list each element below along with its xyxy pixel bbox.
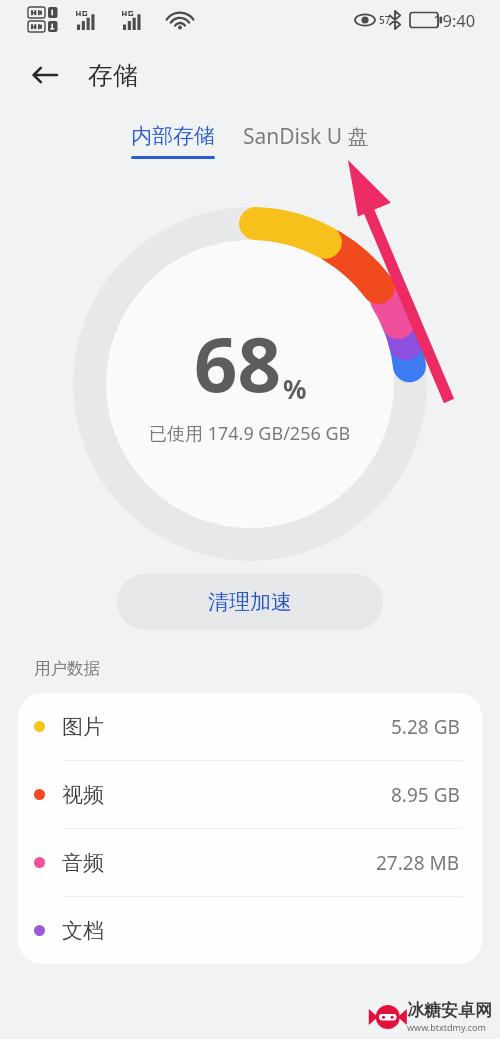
staticText: 已使用 174.9 GB/256 GB — [149, 421, 351, 446]
staticText: 8.95 GB — [391, 782, 460, 808]
button[interactable]: Back — [18, 48, 72, 102]
staticText: 19:40 — [433, 9, 476, 31]
staticText: 68 — [194, 311, 281, 415]
staticText: 冰糖安卓网 — [407, 1000, 492, 1021]
staticText: 27.28 MB — [376, 850, 460, 876]
staticText: 清理加速 — [208, 589, 292, 615]
staticText: 5.28 GB — [391, 714, 460, 740]
staticText: www.btxtdmy.com — [407, 1021, 486, 1033]
button[interactable]: 文档 — [18, 897, 482, 964]
staticText: 文档 — [62, 918, 104, 944]
staticText: 内部存储 — [131, 123, 215, 149]
staticText: 用户数据 — [34, 658, 100, 679]
button[interactable]: 内部存储 — [125, 123, 221, 159]
staticText: SanDisk U 盘 — [243, 122, 369, 151]
button[interactable]: 音频 — [18, 829, 482, 897]
button[interactable]: 图片 — [18, 693, 482, 761]
staticText: 音频 — [62, 850, 104, 876]
staticText: % — [283, 371, 307, 406]
button[interactable]: 视频 — [18, 761, 482, 829]
staticText: 图片 — [62, 714, 104, 740]
staticText: 57 — [379, 13, 391, 27]
staticText: 存储 — [88, 60, 138, 91]
button[interactable]: SanDisk U 盘 — [237, 122, 375, 161]
staticText: 视频 — [62, 782, 104, 808]
button[interactable]: 清理加速 — [117, 574, 383, 630]
